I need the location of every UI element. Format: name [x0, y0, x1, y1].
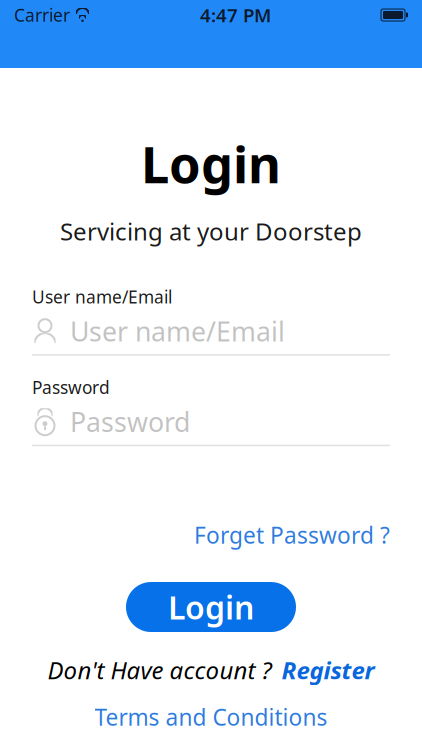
button[interactable]: Forget Password ?	[194, 514, 390, 556]
button[interactable]: Register	[281, 654, 374, 686]
button[interactable]: User name/Email	[32, 312, 390, 350]
staticText: Forget Password ?	[194, 520, 390, 550]
staticText: Login	[168, 586, 254, 628]
staticText: User name/Email	[32, 285, 172, 308]
staticText: Password	[70, 404, 190, 439]
button[interactable]: Login	[126, 582, 296, 632]
staticText: Password	[32, 376, 110, 399]
staticText: Register	[281, 654, 374, 686]
staticText: 4:47 PM	[200, 3, 271, 27]
button[interactable]: Password	[32, 403, 390, 441]
staticText: Terms and Conditions	[94, 702, 327, 732]
staticText: User name/Email	[70, 313, 285, 349]
staticText: Carrier	[14, 3, 70, 26]
staticText: Servicing at your Doorstep	[60, 215, 362, 247]
staticText: Don't Have account ?	[47, 654, 271, 686]
button[interactable]: Terms and Conditions	[94, 702, 327, 732]
staticText: Login	[141, 130, 281, 197]
